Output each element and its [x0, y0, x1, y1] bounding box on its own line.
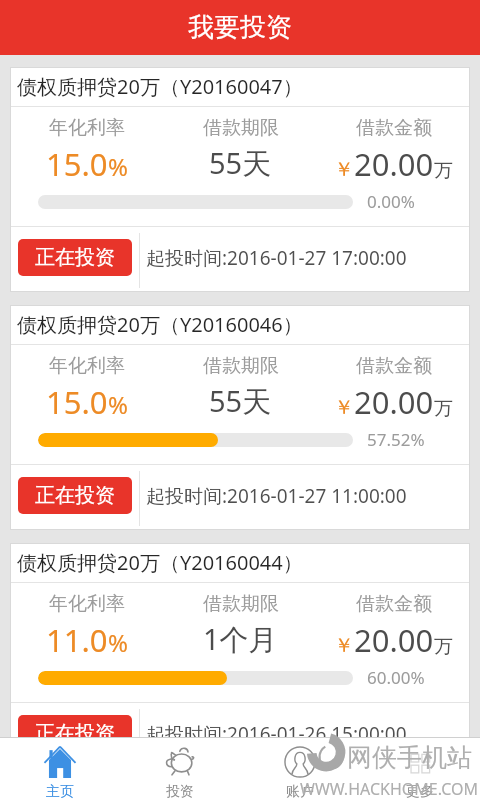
staticText: 年化利率: [49, 592, 125, 616]
staticText: 正在投资: [35, 721, 115, 737]
staticText: 正在投资: [35, 245, 115, 270]
staticText: 60.00%: [367, 666, 425, 689]
staticText: 正在投资: [35, 483, 115, 508]
staticText: 债权质押贷20万（Y20160047）: [17, 73, 303, 100]
button[interactable]: Home: [0, 738, 120, 800]
staticText: 1个月: [203, 619, 278, 659]
staticText: 借款期限: [203, 116, 279, 140]
button[interactable]: Invest: [120, 738, 240, 800]
staticText: 55天: [209, 381, 272, 421]
staticText: 起投时间:2016-01-27 17:00:00: [146, 245, 407, 271]
staticText: 债权质押贷20万（Y20160044）: [17, 549, 303, 576]
staticText: 20.00: [354, 381, 434, 423]
staticText: 20.00: [354, 619, 434, 661]
staticText: 万: [434, 635, 453, 659]
staticText: 借款金额: [356, 592, 432, 616]
staticText: 0.00%: [367, 190, 415, 213]
staticText: %: [108, 388, 128, 421]
button[interactable]: Account: [240, 738, 360, 800]
staticText: 15.0: [46, 381, 108, 423]
staticText: 万: [434, 397, 453, 421]
staticText: 15.0: [46, 143, 108, 185]
staticText: 年化利率: [49, 116, 125, 140]
staticText: 起投时间:2016-01-27 11:00:00: [146, 483, 407, 509]
staticText: %: [108, 150, 128, 183]
staticText: 55天: [209, 143, 272, 183]
staticText: 投资: [166, 783, 194, 800]
button[interactable]: 债权质押贷20万（Y20160046）: [10, 305, 470, 530]
staticText: 20.00: [354, 143, 434, 185]
staticText: ￥: [334, 157, 354, 182]
staticText: 57.52%: [367, 428, 425, 451]
staticText: 借款期限: [203, 354, 279, 378]
staticText: %: [108, 626, 128, 659]
staticText: 借款金额: [356, 354, 432, 378]
staticText: 债权质押贷20万（Y20160046）: [17, 311, 303, 338]
staticText: WWW.HACKHOME.COM: [300, 778, 478, 800]
button[interactable]: 正在投资: [18, 239, 132, 276]
staticText: 11.0: [46, 619, 108, 661]
staticText: 万: [434, 159, 453, 183]
staticText: 主页: [46, 783, 74, 800]
staticText: ￥: [334, 395, 354, 420]
staticText: 借款金额: [356, 116, 432, 140]
staticText: 我要投资: [188, 11, 292, 44]
button[interactable]: More: [360, 738, 480, 800]
staticText: 网侠手机站: [347, 742, 472, 773]
button[interactable]: 债权质押贷20万（Y20160044）: [10, 543, 470, 737]
button[interactable]: 正在投资: [18, 715, 132, 737]
staticText: 年化利率: [49, 354, 125, 378]
staticText: 账户: [286, 783, 314, 800]
staticText: 起投时间:2016-01-26 15:00:00: [146, 721, 407, 737]
staticText: 更多: [406, 783, 434, 800]
button[interactable]: 债权质押贷20万（Y20160047）: [10, 67, 470, 292]
staticText: ￥: [334, 633, 354, 658]
button[interactable]: 正在投资: [18, 477, 132, 514]
staticText: 借款期限: [203, 592, 279, 616]
